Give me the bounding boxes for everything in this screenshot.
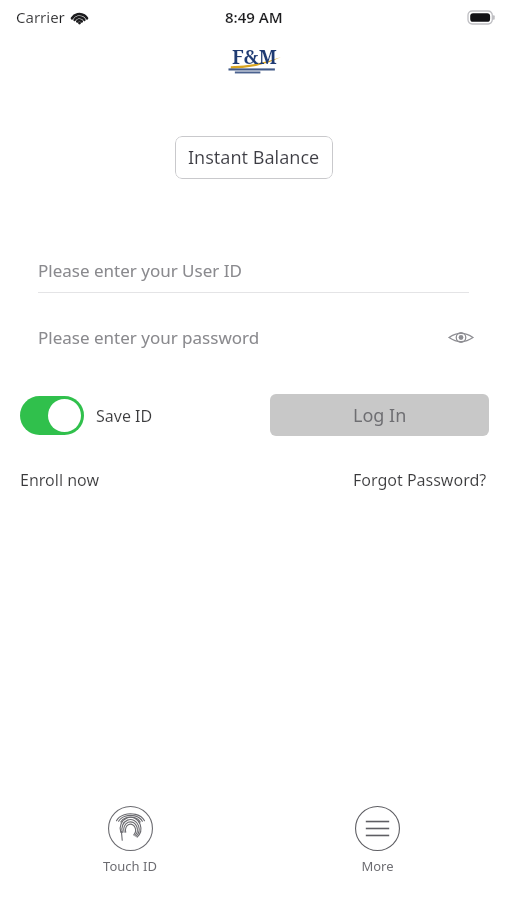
button[interactable]: Please enter your User ID bbox=[0, 248, 507, 292]
button[interactable]: Forgot Password? bbox=[353, 469, 487, 491]
button[interactable]: Enroll now bbox=[20, 469, 99, 491]
button[interactable]: Touch ID bbox=[98, 806, 162, 875]
button[interactable]: Show password bbox=[445, 321, 477, 353]
staticText: Touch ID bbox=[103, 857, 157, 875]
button[interactable]: Instant Balance bbox=[175, 136, 333, 179]
staticText: Carrier bbox=[16, 7, 65, 27]
staticText: More bbox=[361, 857, 394, 875]
staticText: Instant Balance bbox=[188, 145, 320, 170]
button[interactable]: Save ID toggle bbox=[20, 396, 84, 435]
staticText: Enroll now bbox=[20, 469, 99, 491]
staticText: Log In bbox=[353, 403, 407, 428]
staticText: Please enter your password bbox=[38, 326, 260, 349]
button[interactable]: Please enter your password bbox=[0, 317, 507, 357]
staticText: Forgot Password? bbox=[353, 469, 487, 491]
staticText: Save ID bbox=[96, 405, 153, 427]
button[interactable]: More bbox=[345, 806, 409, 875]
staticText: F&M bbox=[232, 44, 277, 70]
button[interactable]: Log In bbox=[270, 394, 489, 436]
staticText: 8:49 AM bbox=[225, 7, 283, 27]
button[interactable]: Save ID toggle bbox=[20, 396, 153, 435]
staticText: Please enter your User ID bbox=[38, 259, 242, 282]
